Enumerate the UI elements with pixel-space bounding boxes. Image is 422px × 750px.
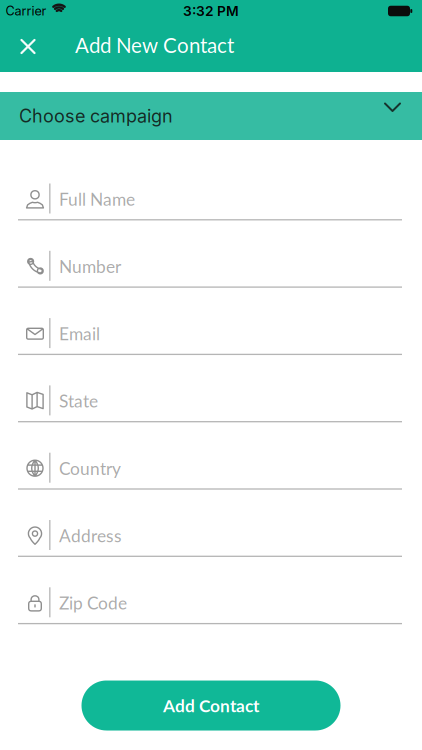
staticText: Number xyxy=(59,256,121,277)
button[interactable]: State xyxy=(0,374,422,422)
button[interactable]: Number xyxy=(0,240,422,288)
button[interactable]: Country xyxy=(0,442,422,490)
staticText: Address xyxy=(59,525,122,546)
staticText: Zip Code xyxy=(59,592,127,613)
staticText: State xyxy=(59,390,98,411)
staticText: Email xyxy=(59,323,100,344)
button[interactable]: Choose campaign xyxy=(0,92,422,140)
staticText: Choose campaign xyxy=(19,105,173,127)
staticText: Carrier xyxy=(5,3,46,19)
button[interactable]: Address xyxy=(0,509,422,557)
staticText: Add Contact xyxy=(163,695,259,716)
button[interactable]: Add Contact xyxy=(81,680,340,730)
button[interactable]: Full Name xyxy=(0,172,422,220)
staticText: Add New Contact xyxy=(75,33,234,57)
staticText: 3:32 PM xyxy=(183,3,239,19)
staticText: Country xyxy=(59,458,121,479)
staticText: Full Name xyxy=(59,189,135,209)
button[interactable] xyxy=(6,24,50,68)
button[interactable]: Email xyxy=(0,307,422,355)
button[interactable]: Zip Code xyxy=(0,576,422,624)
